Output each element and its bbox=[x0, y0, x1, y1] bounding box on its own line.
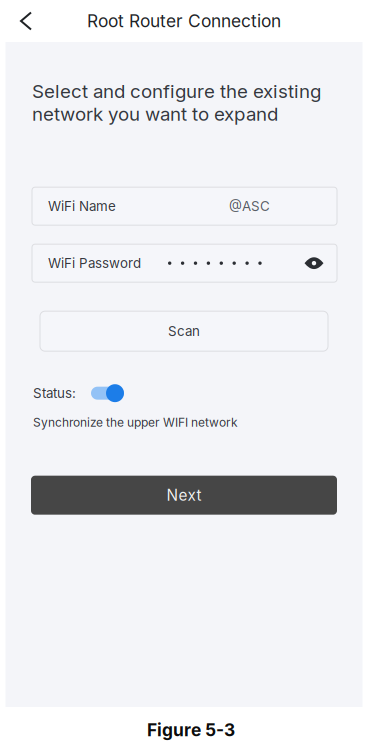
staticText: @ASC bbox=[229, 198, 270, 214]
staticText: Next bbox=[166, 486, 201, 504]
staticText: WiFi Password bbox=[48, 255, 141, 271]
staticText: Synchronize the upper WIFI network bbox=[33, 415, 238, 430]
staticText: Root Router Connection bbox=[87, 10, 281, 31]
button[interactable]: Next bbox=[31, 476, 337, 515]
staticText: WiFi Name bbox=[48, 198, 116, 214]
button[interactable]: Scan bbox=[40, 311, 328, 351]
staticText: Scan bbox=[168, 323, 200, 339]
staticText: Status: bbox=[33, 385, 76, 401]
button[interactable]: Show password bbox=[299, 248, 329, 278]
staticText: Select and configure the existing networ… bbox=[32, 80, 321, 125]
button[interactable]: Status, on bbox=[90, 382, 125, 404]
button[interactable]: Back bbox=[0, 0, 52, 42]
staticText: Figure 5-3 bbox=[147, 719, 235, 740]
